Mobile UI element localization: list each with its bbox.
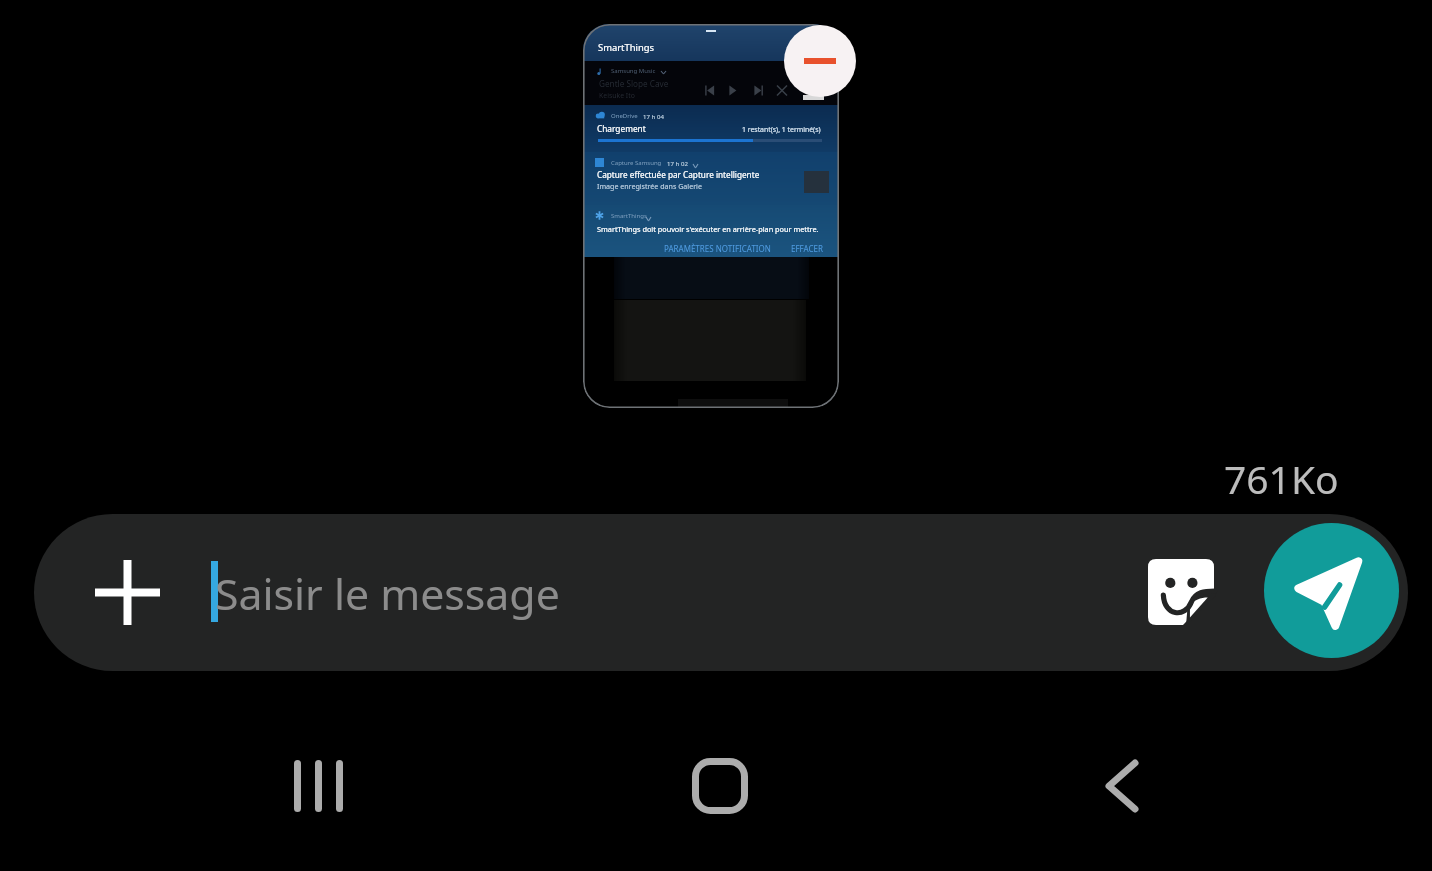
button[interactable]: Send [1264, 523, 1399, 658]
staticText: PARAMÈTRES NOTIFICATION [664, 243, 771, 254]
staticText: 761Ko [1224, 452, 1339, 505]
staticText: Capture effectuée par Capture intelligen… [597, 169, 760, 180]
staticText: Keisuke Ito [599, 91, 635, 100]
button[interactable]: Stickers [1134, 514, 1227, 670]
staticText: EFFACER [791, 243, 824, 254]
staticText: SmartThings doit pouvoir s'exécuter en a… [597, 224, 819, 234]
staticText: 17 h 02 [667, 159, 688, 167]
button[interactable]: Recent apps [238, 700, 398, 871]
button[interactable]: Attachment preview [583, 24, 839, 408]
button[interactable]: Attach [60, 514, 194, 671]
staticText: Capture Samsung [611, 159, 662, 167]
staticText: Gentle Slope Cave [599, 78, 669, 89]
staticText: SmartThings [611, 212, 647, 220]
staticText: 1 restant(s), 1 terminé(s) [742, 125, 821, 134]
staticText: Chargement [597, 123, 646, 134]
button[interactable]: Back [1042, 700, 1202, 871]
staticText: Image enregistrée dans Galerie [597, 181, 702, 191]
staticText: OneDrive [611, 112, 638, 120]
staticText: Samsung Music [611, 67, 656, 75]
staticText: 17 h 04 [643, 112, 664, 120]
button[interactable]: Remove attachment [784, 25, 856, 97]
staticText: Saisir le message [215, 564, 560, 622]
button[interactable]: Home [640, 700, 800, 871]
staticText: SmartThings [598, 41, 654, 54]
